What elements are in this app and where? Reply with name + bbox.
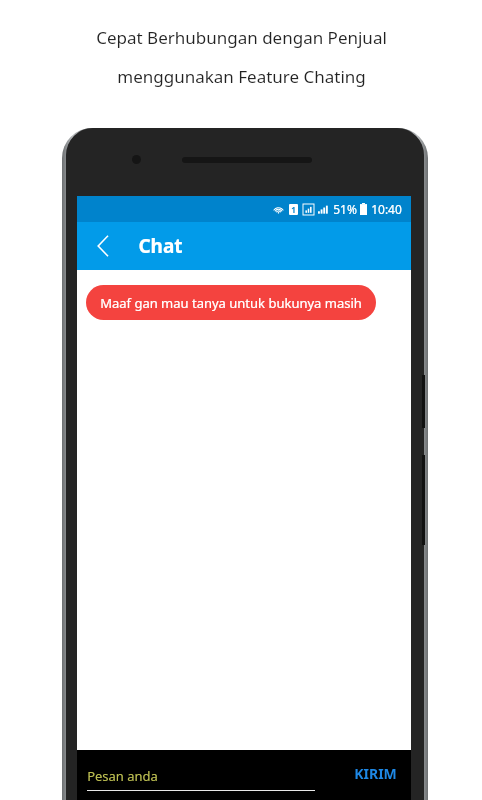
staticText: Cepat Berhubungan dengan Penjual (96, 26, 387, 49)
staticText: 51% (333, 201, 357, 217)
button[interactable]: Pesan anda (87, 767, 315, 791)
button[interactable]: Back (83, 226, 123, 266)
staticText: 1 (291, 204, 296, 215)
staticText: Chat (138, 233, 183, 259)
button[interactable]: Maaf gan mau tanya untuk bukunya masih (86, 285, 376, 320)
button[interactable]: KIRIM (340, 756, 411, 791)
staticText: Maaf gan mau tanya untuk bukunya masih (100, 294, 362, 312)
staticText: menggunakan Feature Chating (117, 65, 366, 88)
staticText: 10:40 (371, 201, 402, 217)
staticText: Pesan anda (87, 767, 158, 785)
staticText: KIRIM (354, 764, 397, 783)
